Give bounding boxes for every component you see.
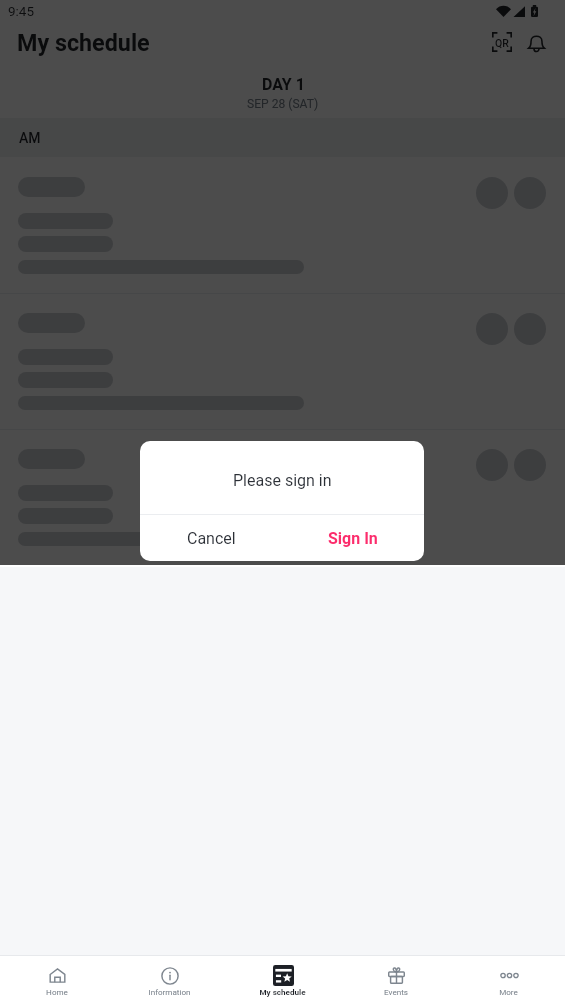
staticText: My schedule: [259, 987, 306, 996]
button[interactable]: More: [452, 956, 565, 1004]
button[interactable]: Scan QR code: [485, 25, 519, 59]
staticText: Cancel: [187, 529, 236, 548]
button[interactable]: My schedule: [226, 956, 339, 1004]
staticText: DAY 1: [262, 75, 305, 94]
staticText: AM: [19, 130, 41, 146]
button[interactable]: Notifications: [519, 25, 553, 59]
staticText: Please sign in: [233, 471, 332, 490]
staticText: More: [499, 987, 518, 996]
button[interactable]: [0, 293, 565, 429]
staticText: QR: [495, 37, 509, 49]
button[interactable]: [0, 429, 565, 565]
staticText: My schedule: [17, 29, 150, 56]
staticText: Home: [46, 987, 68, 996]
staticText: SEP 28 (SAT): [247, 97, 319, 111]
button[interactable]: Cancel: [140, 515, 282, 561]
button[interactable]: Events: [339, 956, 452, 1004]
staticText: Information: [148, 987, 191, 996]
staticText: Events: [384, 987, 408, 996]
staticText: 9:45: [8, 3, 35, 19]
button[interactable]: Home: [0, 956, 113, 1004]
button[interactable]: Sign In: [282, 515, 424, 561]
button[interactable]: [0, 157, 565, 293]
button[interactable]: Information: [113, 956, 226, 1004]
staticText: Sign In: [328, 529, 378, 548]
